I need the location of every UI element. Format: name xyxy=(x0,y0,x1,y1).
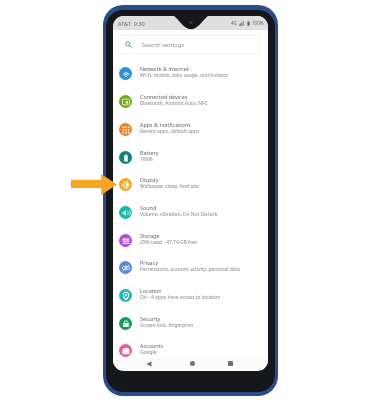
staticText: Volume, vibration, Do Not Disturb xyxy=(140,211,218,218)
button[interactable]: Back xyxy=(141,357,157,370)
staticText: Recent apps, default apps xyxy=(140,128,200,135)
staticText: Network & internet xyxy=(140,65,189,72)
button[interactable]: Battery xyxy=(113,143,268,171)
button[interactable]: Location xyxy=(113,281,268,309)
staticText: Search settings xyxy=(142,41,185,49)
button[interactable]: Sound xyxy=(113,198,268,226)
staticText: Security xyxy=(140,315,161,322)
button[interactable]: Display xyxy=(113,170,268,198)
staticText: Accounts xyxy=(140,342,164,349)
staticText: Permissions, account activity, personal … xyxy=(140,266,241,273)
staticText: Bluetooth, Android Auto, NFC xyxy=(140,100,208,107)
staticText: Storage xyxy=(140,232,160,239)
staticText: 4G xyxy=(231,20,237,26)
button[interactable]: Apps & notifications xyxy=(113,115,268,143)
button[interactable]: Privacy xyxy=(113,253,268,281)
staticText: 25% used - 47.74 GB free xyxy=(140,239,198,246)
staticText: Connected devices xyxy=(140,93,188,100)
staticText: Wallpaper, sleep, font size xyxy=(140,183,200,190)
staticText: Wi-Fi, mobile, data usage, and hotspot xyxy=(140,72,229,79)
button[interactable]: Network & internet xyxy=(113,59,268,87)
button[interactable]: Security xyxy=(113,309,268,337)
staticText: Location xyxy=(140,287,162,294)
staticText: On - 4 apps have access to location xyxy=(140,294,221,301)
button[interactable]: Home xyxy=(184,357,200,370)
button[interactable]: Accounts xyxy=(113,336,268,364)
staticText: Display xyxy=(140,176,159,183)
button[interactable]: Connected devices xyxy=(113,87,268,115)
staticText: 100% xyxy=(252,20,264,26)
button[interactable]: Recent apps xyxy=(222,357,238,370)
staticText: Screen lock, fingerprint xyxy=(140,322,194,329)
staticText: Google xyxy=(140,349,157,356)
button[interactable]: Storage xyxy=(113,226,268,254)
button[interactable]: Search settings xyxy=(118,35,260,54)
staticText: Apps & notifications xyxy=(140,121,191,128)
staticText: Battery xyxy=(140,149,159,156)
staticText: Sound xyxy=(140,204,157,211)
staticText: Privacy xyxy=(140,259,158,266)
staticText: 100% xyxy=(140,156,153,163)
staticText: AT&T 9:30 xyxy=(118,20,145,27)
